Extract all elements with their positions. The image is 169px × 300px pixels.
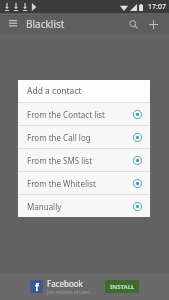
staticText: From the SMS list — [27, 155, 133, 166]
staticText: From the Whitelist — [27, 178, 133, 189]
staticText: INSTALL — [110, 283, 135, 291]
button[interactable]: Add contact — [143, 14, 163, 34]
staticText: Manually — [27, 201, 133, 212]
staticText: From the Call log — [27, 132, 133, 143]
button[interactable]: Open navigation drawer — [5, 16, 21, 32]
button[interactable]: From the SMS list — [18, 149, 150, 171]
button[interactable]: f — [0, 273, 169, 300]
button[interactable]: From the Contact list — [18, 103, 150, 125]
staticText: Blacklist — [26, 17, 65, 31]
button[interactable]: Search — [123, 14, 143, 34]
button[interactable]: Manually — [18, 195, 150, 217]
staticText: Join millions of users — [47, 289, 91, 295]
button[interactable]: INSTALL — [105, 280, 139, 293]
staticText: Facebook — [47, 278, 83, 289]
staticText: 17:07 — [148, 2, 166, 12]
staticText: Add a contact — [27, 85, 82, 97]
staticText: f — [35, 280, 39, 293]
button[interactable]: From the Whitelist — [18, 172, 150, 194]
button[interactable]: From the Call log — [18, 126, 150, 148]
staticText: From the Contact list — [27, 109, 133, 120]
